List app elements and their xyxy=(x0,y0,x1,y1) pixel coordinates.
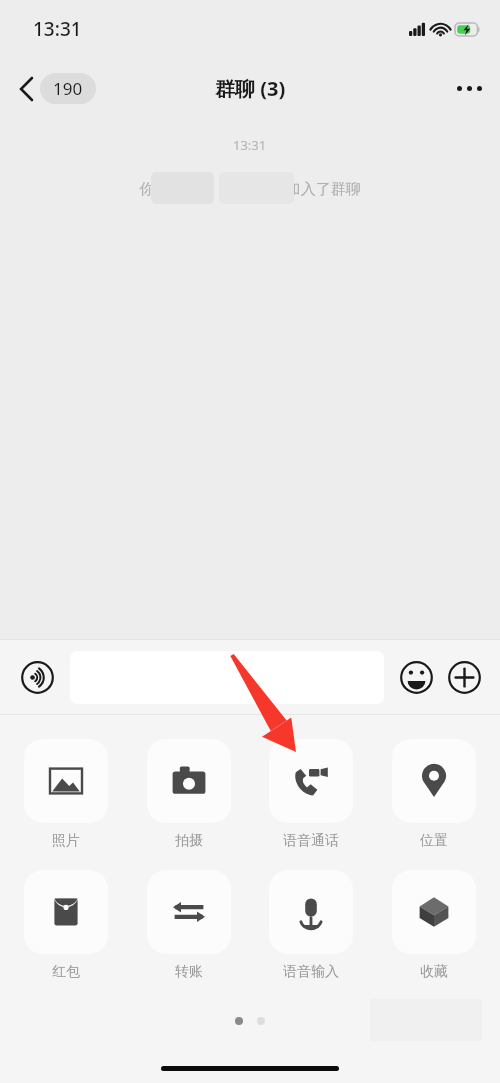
button[interactable]: Location xyxy=(384,739,484,850)
button[interactable]: Back, 190 xyxy=(16,69,100,108)
staticText: 语音输入 xyxy=(283,963,339,981)
button[interactable]: Favorites xyxy=(384,870,484,981)
staticText: 你邀请 加入了群聊 xyxy=(139,178,361,198)
button[interactable]: More functions xyxy=(440,653,488,701)
staticText: 拍摄 xyxy=(175,832,203,850)
staticText: 语音通话 xyxy=(283,832,339,850)
staticText: 190 xyxy=(53,77,83,100)
button[interactable]: Voice input xyxy=(261,870,361,981)
button[interactable]: Voice input xyxy=(12,652,62,702)
button[interactable]: Message input xyxy=(70,651,384,704)
staticText: 红包 xyxy=(52,963,80,981)
staticText: 照片 xyxy=(52,832,80,850)
staticText: 收藏 xyxy=(420,963,448,981)
button[interactable]: Transfer xyxy=(139,870,239,981)
button[interactable]: Voice call xyxy=(261,739,361,850)
staticText: 群聊 (3) xyxy=(215,75,286,102)
staticText: 13:31 xyxy=(33,16,82,42)
button[interactable]: Photos xyxy=(16,739,116,850)
staticText: 位置 xyxy=(420,832,448,850)
button[interactable]: Emoji xyxy=(392,653,440,701)
button[interactable]: Camera xyxy=(139,739,239,850)
staticText: 13:31 xyxy=(233,136,267,154)
button[interactable]: More options xyxy=(439,74,500,103)
staticText: 转账 xyxy=(175,963,203,981)
button[interactable]: Red packet xyxy=(16,870,116,981)
